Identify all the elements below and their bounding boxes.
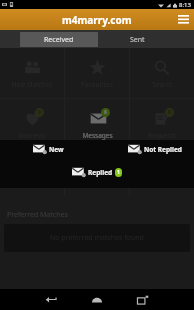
staticText: Sent: [130, 35, 145, 45]
button[interactable]: Match Watch: [0, 150, 64, 196]
button[interactable]: New: [32, 143, 65, 155]
staticText: Messages: [82, 131, 113, 140]
staticText: 8:13: [179, 1, 191, 9]
staticText: Interest Matches: [136, 180, 188, 189]
staticText: 0: [38, 109, 41, 116]
button[interactable]: Back: [28, 289, 74, 310]
staticText: 0: [168, 109, 171, 116]
staticText: Not Replied: [144, 145, 182, 154]
button[interactable]: Recent apps: [120, 289, 166, 310]
staticText: Preferred Matches: [7, 210, 68, 220]
staticText: New: [49, 145, 64, 154]
staticText: Match Watch: [12, 180, 52, 189]
button[interactable]: Menu: [172, 9, 194, 30]
button[interactable]: Replied: [71, 166, 123, 178]
staticText: No preferred matches found: [50, 233, 144, 243]
staticText: m4marry.com: [62, 13, 132, 27]
button[interactable]: 0: [130, 99, 194, 149]
button[interactable]: Interest Matches: [130, 150, 194, 196]
staticText: 6: [104, 109, 107, 116]
button[interactable]: Received: [20, 32, 98, 47]
button[interactable]: 0: [0, 99, 64, 149]
button[interactable]: Not Replied: [127, 143, 183, 155]
button[interactable]: Home: [74, 289, 120, 310]
staticText: Received: [44, 35, 74, 45]
staticText: 1: [117, 169, 120, 176]
staticText: Replied: [88, 168, 113, 177]
button[interactable]: Sent: [98, 32, 176, 47]
button[interactable]: [65, 150, 129, 196]
button[interactable]: 6: [65, 99, 129, 149]
